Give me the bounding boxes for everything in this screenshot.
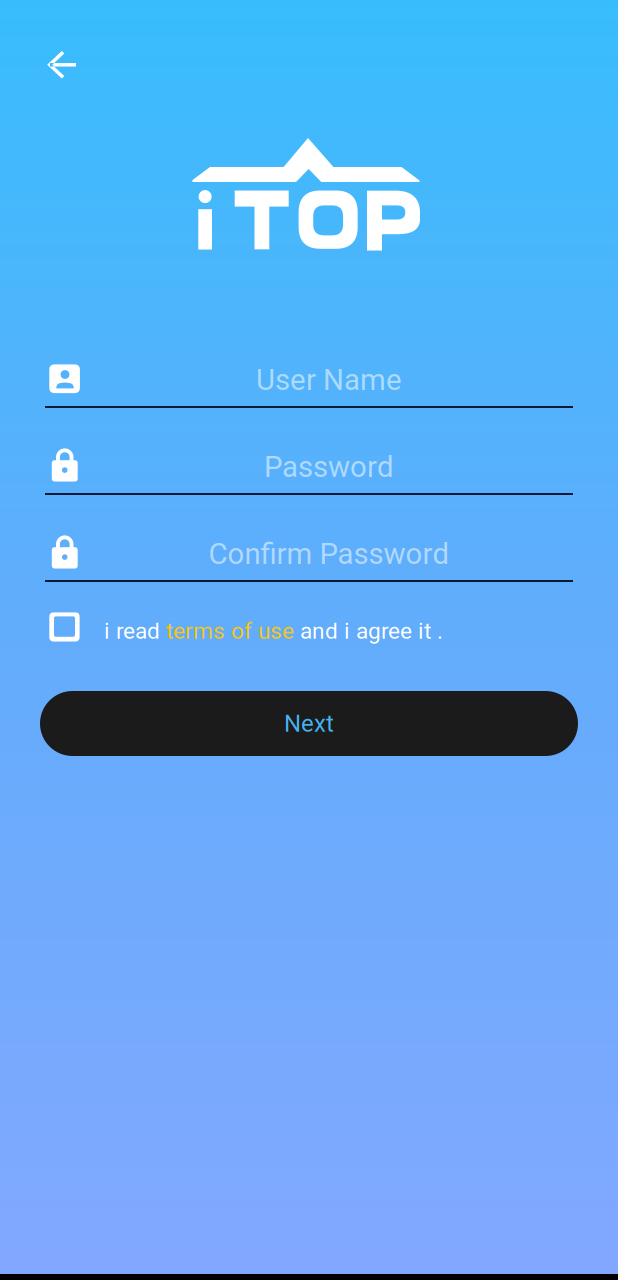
button[interactable]: User Name bbox=[45, 360, 573, 420]
button[interactable]: i read bbox=[49, 609, 441, 649]
button[interactable]: Next bbox=[40, 691, 578, 756]
button[interactable]: Confirm Password bbox=[45, 534, 573, 594]
staticText: Confirm Password bbox=[208, 537, 449, 571]
staticText: terms of use bbox=[166, 618, 294, 644]
staticText: Password bbox=[264, 450, 394, 484]
button[interactable]: Back bbox=[34, 37, 91, 93]
staticText: User Name bbox=[256, 363, 402, 397]
staticText: and i agree it . bbox=[294, 618, 443, 644]
button[interactable]: Password bbox=[45, 447, 573, 507]
staticText: i read bbox=[104, 618, 166, 644]
staticText: Next bbox=[284, 709, 334, 737]
